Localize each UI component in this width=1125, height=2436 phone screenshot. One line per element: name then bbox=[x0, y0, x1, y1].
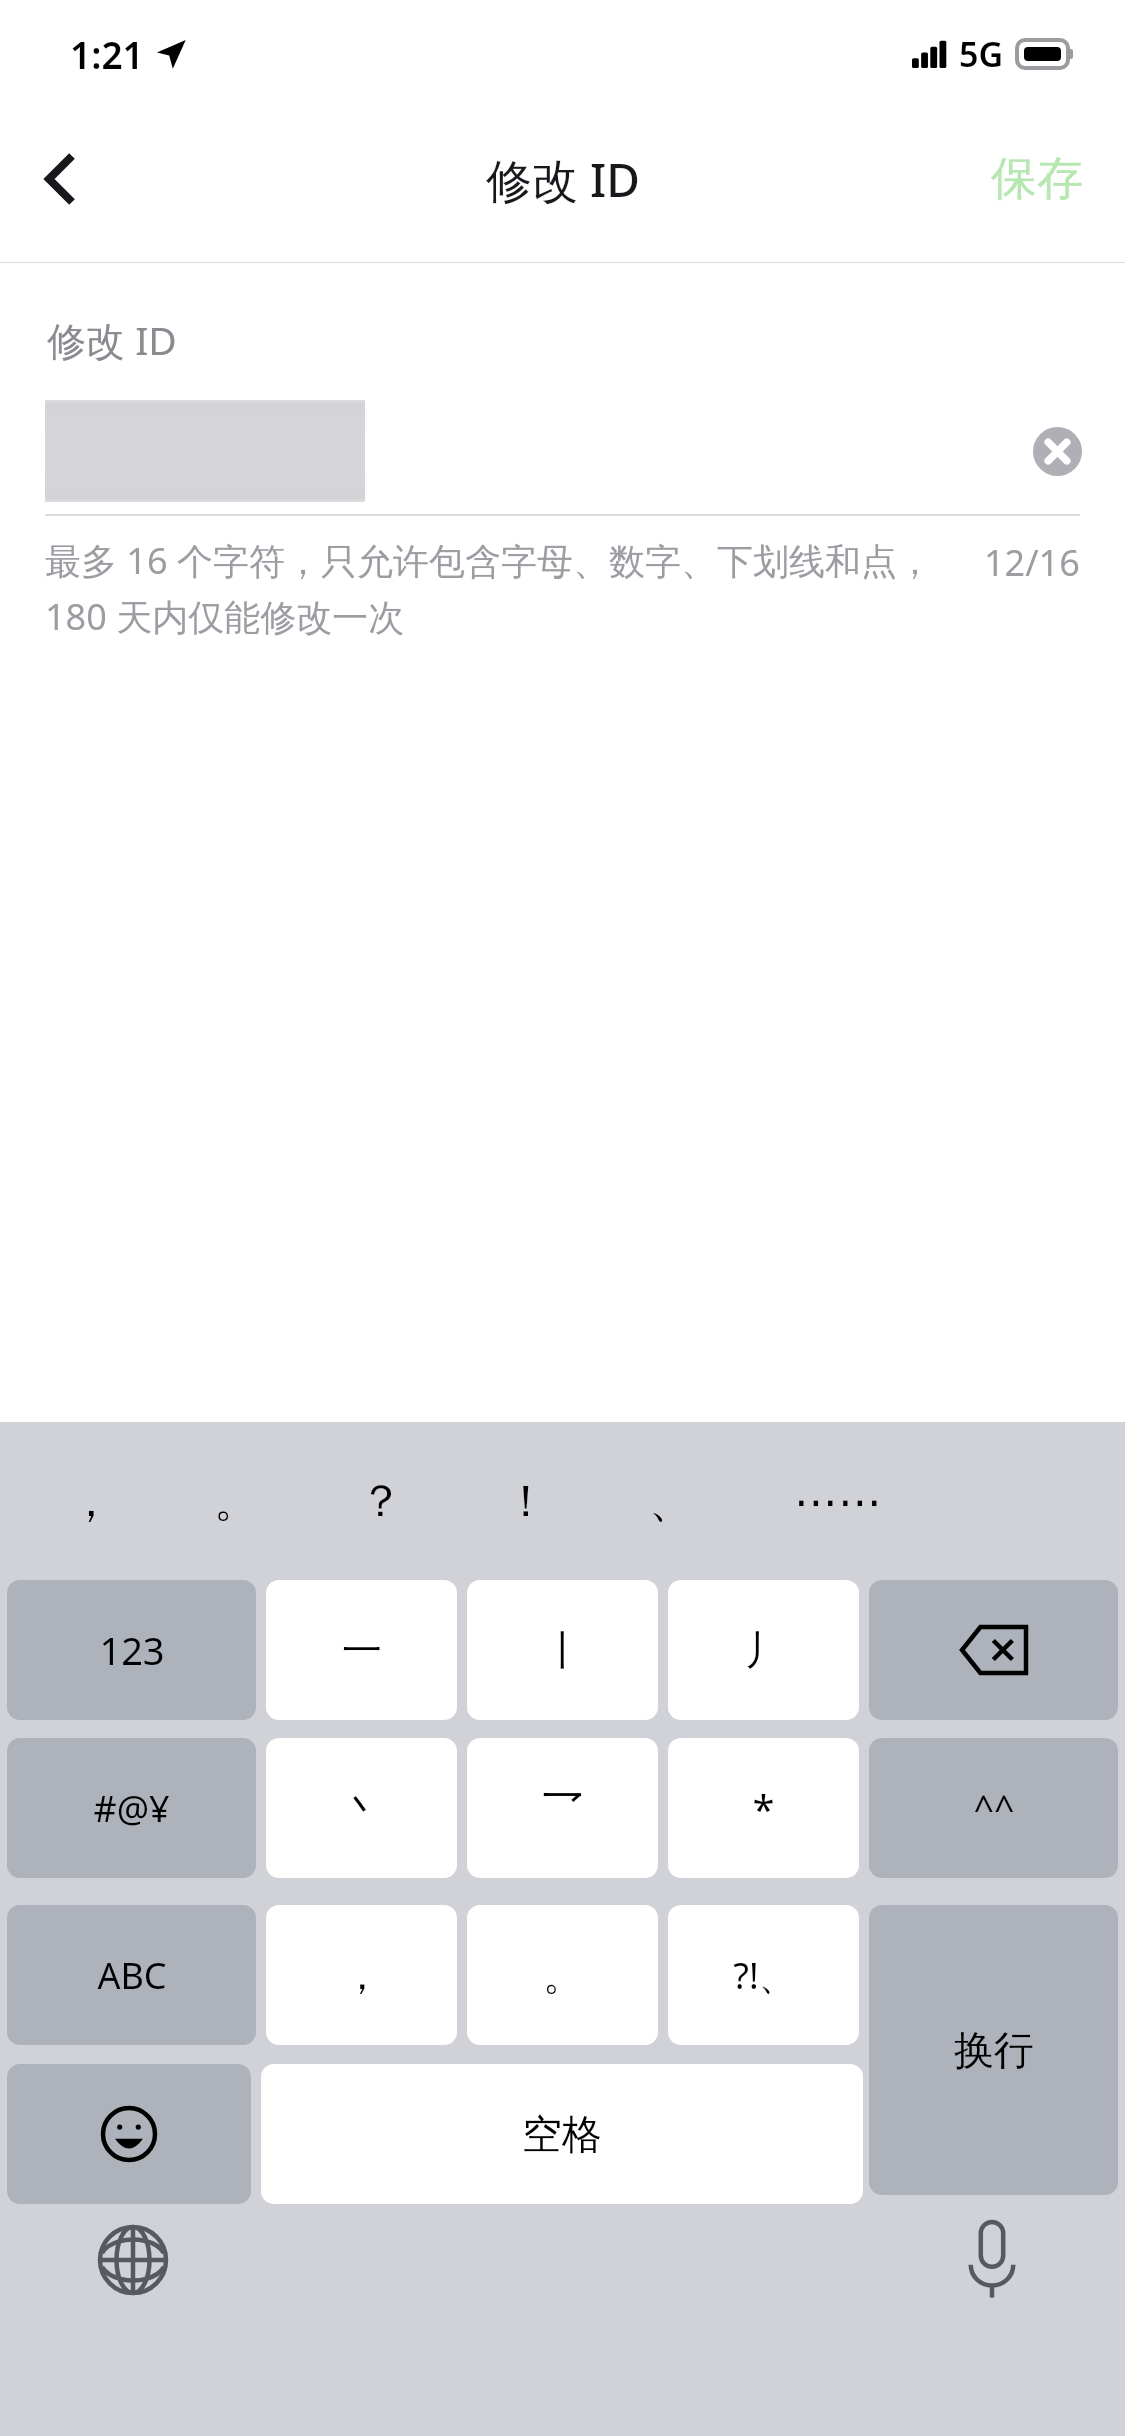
button[interactable]: 。 bbox=[467, 1905, 658, 2045]
button[interactable]: 123 bbox=[7, 1580, 256, 1720]
button[interactable]: 丿 bbox=[668, 1580, 859, 1720]
button[interactable]: 丶 bbox=[266, 1738, 457, 1878]
staticText: ？ bbox=[359, 1474, 403, 1529]
button[interactable]: Emoji bbox=[7, 2064, 251, 2204]
staticText: ！ bbox=[504, 1474, 548, 1529]
staticText: 。 bbox=[214, 1474, 258, 1529]
staticText: 最多 16 个字符，只允许包含字母、数字、下划线和点，180 天内仅能修改一次 bbox=[45, 536, 954, 641]
staticText: ⋯⋯ bbox=[794, 1476, 882, 1527]
button[interactable]: ！ bbox=[453, 1422, 598, 1580]
button[interactable]: ？ bbox=[308, 1422, 453, 1580]
staticText: 乛 bbox=[543, 1783, 583, 1833]
staticText: 5G bbox=[959, 31, 1004, 77]
button[interactable]: Back bbox=[0, 119, 120, 239]
staticText: 、 bbox=[649, 1474, 693, 1529]
staticText: 丨 bbox=[543, 1625, 583, 1675]
button[interactable]: 。 bbox=[163, 1422, 308, 1580]
staticText: 修改 ID bbox=[486, 148, 640, 211]
button[interactable]: 空格 bbox=[261, 2064, 863, 2204]
button[interactable]: 丨 bbox=[467, 1580, 658, 1720]
staticText: ， bbox=[342, 1950, 382, 2000]
staticText: 一 bbox=[342, 1625, 382, 1675]
button[interactable]: ， bbox=[266, 1905, 457, 2045]
button[interactable]: 、 bbox=[598, 1422, 743, 1580]
button[interactable]: Delete bbox=[869, 1580, 1118, 1720]
staticText: * bbox=[752, 1781, 775, 1835]
staticText: ^^ bbox=[973, 1784, 1015, 1833]
staticText: 12/16 bbox=[984, 538, 1080, 587]
button[interactable]: 换行 bbox=[869, 1905, 1118, 2195]
staticText: 丶 bbox=[342, 1783, 382, 1833]
button[interactable]: ABC bbox=[7, 1905, 256, 2045]
button[interactable]: ^^ bbox=[869, 1738, 1118, 1878]
staticText: 123 bbox=[99, 1624, 165, 1676]
button[interactable]: Change keyboard bbox=[88, 2215, 178, 2305]
staticText: #@¥ bbox=[93, 1784, 170, 1833]
button[interactable]: ， bbox=[18, 1422, 163, 1580]
button[interactable]: * bbox=[668, 1738, 859, 1878]
staticText: 换行 bbox=[954, 2025, 1034, 2075]
staticText: 保存 bbox=[991, 150, 1083, 208]
button[interactable]: 保存 bbox=[975, 132, 1099, 226]
button[interactable]: #@¥ bbox=[7, 1738, 256, 1878]
staticText: ?!、 bbox=[733, 1951, 795, 2000]
staticText: 1:21 bbox=[70, 29, 144, 79]
staticText: 丿 bbox=[744, 1625, 784, 1675]
button[interactable]: 一 bbox=[266, 1580, 457, 1720]
button[interactable]: ?!、 bbox=[668, 1905, 859, 2045]
staticText: ABC bbox=[97, 1951, 167, 2000]
staticText: 修改 ID bbox=[47, 313, 177, 366]
button[interactable]: Voice input bbox=[947, 2215, 1037, 2305]
staticText: 空格 bbox=[522, 2109, 602, 2159]
staticText: 。 bbox=[543, 1950, 583, 2000]
staticText: ， bbox=[69, 1474, 113, 1529]
button[interactable]: ⋯⋯ bbox=[743, 1422, 933, 1580]
button[interactable]: 乛 bbox=[467, 1738, 658, 1878]
button[interactable]: Clear text bbox=[1015, 409, 1099, 493]
